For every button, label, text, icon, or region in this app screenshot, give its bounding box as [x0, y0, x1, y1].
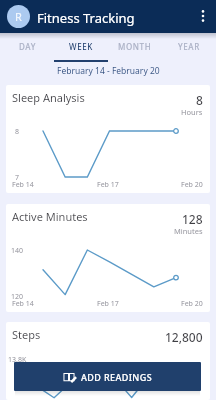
staticText: MONTH: [118, 41, 152, 52]
button[interactable]: DAY: [0, 33, 54, 62]
staticText: Feb 14: [12, 299, 34, 309]
staticText: Feb 17: [97, 299, 119, 309]
staticText: Feb 20: [181, 180, 203, 190]
staticText: 8: [15, 127, 20, 137]
staticText: 128: [182, 211, 203, 227]
button[interactable]: Sleep Analysis: [6, 85, 210, 193]
staticText: 7: [15, 173, 20, 183]
button[interactable]: More options: [191, 4, 215, 28]
staticText: 8: [196, 92, 203, 108]
button[interactable]: Profile: [7, 5, 30, 28]
staticText: Fitness Tracking: [37, 9, 135, 27]
button[interactable]: ADD READINGS: [14, 362, 201, 391]
button[interactable]: YEAR: [162, 33, 216, 62]
staticText: Feb 14: [12, 180, 34, 190]
staticText: YEAR: [178, 41, 200, 52]
staticText: Feb 17: [97, 180, 119, 190]
staticText: Hours: [181, 107, 203, 117]
button[interactable]: Steps: [6, 322, 210, 400]
staticText: 12,800: [165, 329, 203, 345]
staticText: Active Minutes: [12, 209, 88, 224]
button[interactable]: MONTH: [108, 33, 162, 62]
staticText: DAY: [19, 41, 36, 52]
staticText: Sleep Analysis: [12, 90, 85, 105]
staticText: 140: [11, 246, 24, 256]
staticText: February 14 - February 20: [57, 65, 160, 77]
staticText: Minutes: [174, 226, 203, 236]
button[interactable]: WEEK: [54, 33, 108, 62]
staticText: 13.8K: [8, 355, 27, 365]
staticText: ADD READINGS: [81, 371, 153, 383]
button[interactable]: Active Minutes: [6, 204, 210, 312]
staticText: R: [15, 9, 22, 24]
staticText: 120: [11, 292, 24, 302]
staticText: Steps: [12, 327, 41, 342]
staticText: Feb 20: [181, 299, 203, 309]
staticText: WEEK: [69, 41, 93, 52]
